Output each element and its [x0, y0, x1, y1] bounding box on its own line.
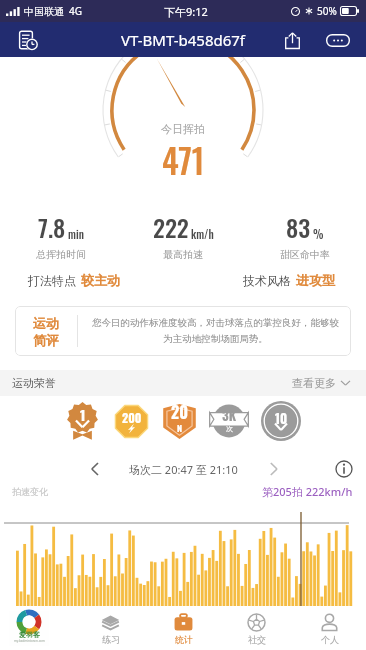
staticText: 10: [275, 408, 288, 427]
button[interactable]: More options: [323, 25, 353, 55]
staticText: 下午9:12: [164, 4, 208, 19]
staticText: km/h: [191, 226, 214, 242]
staticText: 20: [171, 400, 189, 424]
button[interactable]: 3K badge: [208, 400, 250, 442]
button[interactable]: 20 badge: [161, 403, 198, 440]
staticText: 1: [80, 404, 86, 425]
staticText: 总挥拍时间: [36, 248, 86, 261]
staticText: my.badmintoncn.com: [14, 639, 45, 643]
staticText: min: [68, 226, 84, 242]
button[interactable]: Next session: [260, 456, 286, 482]
staticText: 拍速变化: [12, 486, 48, 497]
staticText: 进攻型: [296, 272, 335, 288]
button[interactable]: History: [13, 25, 43, 55]
button[interactable]: 轨迹: [0, 607, 74, 650]
button[interactable]: 10 badge: [261, 401, 301, 441]
staticText: 查看更多: [292, 376, 336, 390]
button[interactable]: 练习: [74, 607, 147, 650]
staticText: 轨迹: [28, 634, 46, 645]
staticText: 83: [286, 209, 311, 245]
button[interactable]: 200 badge: [113, 403, 150, 440]
staticText: %: [313, 226, 324, 242]
staticText: 50%: [317, 4, 337, 18]
staticText: 统计: [175, 634, 193, 645]
staticText: 中国联通: [24, 5, 64, 18]
button[interactable]: Previous session: [81, 456, 107, 482]
staticText: 爱羽客: [19, 630, 40, 639]
staticText: 最高拍速: [163, 248, 203, 261]
button[interactable]: 查看更多: [288, 372, 354, 394]
staticText: 运动: [33, 315, 59, 331]
staticText: 次: [226, 424, 233, 433]
button[interactable]: Share: [277, 25, 307, 55]
staticText: N: [177, 421, 183, 434]
staticText: 7.8: [38, 209, 66, 245]
staticText: 200: [122, 409, 142, 427]
staticText: 练习: [102, 634, 120, 645]
staticText: 3K: [222, 405, 237, 424]
staticText: 技术风格: [243, 273, 291, 288]
staticText: 打法特点: [28, 273, 76, 288]
staticText: 4G: [69, 4, 82, 18]
staticText: 222: [153, 209, 189, 245]
staticText: 今日挥拍: [161, 122, 205, 136]
staticText: 第205拍 222km/h: [262, 484, 353, 499]
button[interactable]: 个人: [293, 607, 366, 650]
staticText: 甜区命中率: [280, 248, 330, 261]
staticText: 场次二 20:47 至 21:10: [129, 462, 238, 477]
staticText: VT-BMT-b458d67f: [121, 30, 246, 50]
button[interactable]: 社交: [220, 607, 293, 650]
button[interactable]: 统计: [147, 607, 220, 650]
button[interactable]: 运动: [15, 306, 351, 356]
staticText: 个人: [321, 634, 339, 645]
button[interactable]: Rank 1 badge: [63, 402, 102, 441]
staticText: 您今日的动作标准度较高，对击球落点的掌控良好，能够较 为主动地控制场面局势。: [92, 317, 339, 345]
staticText: 较主动: [81, 272, 120, 288]
staticText: 社交: [248, 634, 266, 645]
staticText: 471: [162, 136, 205, 185]
button[interactable]: Info: [332, 457, 356, 481]
staticText: 运动荣誉: [12, 376, 56, 390]
staticText: 简评: [33, 332, 59, 348]
